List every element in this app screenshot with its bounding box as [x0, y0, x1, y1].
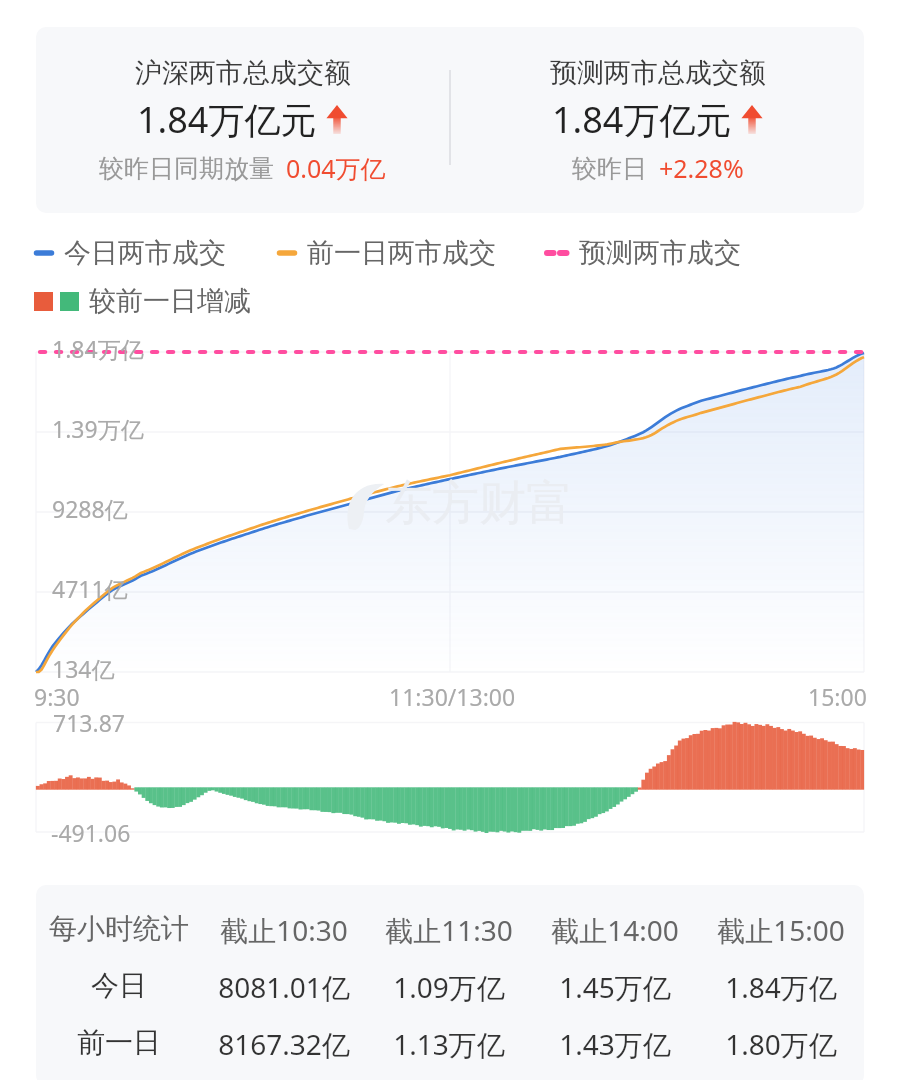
staticText: 预测两市总成交额: [550, 56, 766, 90]
staticText: 东方财富: [385, 474, 573, 533]
staticText: 今日两市成交: [64, 236, 226, 270]
button[interactable]: 沪深两市总成交额: [36, 27, 864, 213]
staticText: 沪深两市总成交额: [135, 56, 351, 90]
staticText: 8081.01亿: [218, 968, 350, 1006]
staticText: 1.84万亿元: [137, 95, 317, 144]
staticText: 较昨日同期放量: [99, 153, 274, 184]
staticText: 1.09万亿: [393, 968, 505, 1006]
staticText: 11:30/13:00: [389, 681, 516, 712]
staticText: 1.84万亿: [52, 333, 144, 364]
staticText: 截止10:30: [220, 911, 348, 949]
button[interactable]: 每小时统计: [36, 885, 864, 1080]
staticText: 1.43万亿: [559, 1025, 671, 1063]
button[interactable]: 前一日两市成交: [277, 236, 496, 270]
other: 上涨: [326, 105, 348, 134]
staticText: 1.13万亿: [393, 1025, 505, 1063]
staticText: 较前一日增减: [89, 284, 251, 318]
staticText: 713.87: [53, 707, 125, 738]
staticText: 截止11:30: [385, 911, 513, 949]
staticText: 0.04万亿: [286, 151, 386, 185]
button[interactable]: 预测两市成交: [544, 236, 741, 270]
staticText: -491.06: [51, 817, 131, 848]
other: 上涨: [741, 105, 763, 134]
staticText: 1.84万亿元: [552, 95, 732, 144]
staticText: 9:30: [34, 681, 80, 712]
staticText: 每小时统计: [49, 911, 189, 946]
staticText: 前一日: [77, 1025, 161, 1060]
staticText: 1.84万亿: [725, 968, 837, 1006]
button[interactable]: 今日两市成交: [34, 236, 226, 270]
staticText: 截止15:00: [717, 911, 845, 949]
staticText: 4711亿: [52, 573, 128, 604]
staticText: 截止14:00: [551, 911, 679, 949]
staticText: 9288亿: [52, 493, 128, 524]
staticText: 8167.32亿: [218, 1025, 350, 1063]
staticText: +2.28%: [659, 151, 744, 185]
staticText: 前一日两市成交: [307, 236, 496, 270]
staticText: 今日: [91, 968, 147, 1003]
staticText: 1.39万亿: [52, 413, 144, 444]
staticText: 1.80万亿: [725, 1025, 837, 1063]
staticText: 预测两市成交: [579, 236, 741, 270]
staticText: 15:00: [808, 681, 867, 712]
staticText: 1.45万亿: [559, 968, 671, 1006]
staticText: 134亿: [52, 653, 115, 684]
staticText: 较昨日: [572, 153, 647, 184]
button[interactable]: 较前一日增减: [34, 284, 251, 318]
